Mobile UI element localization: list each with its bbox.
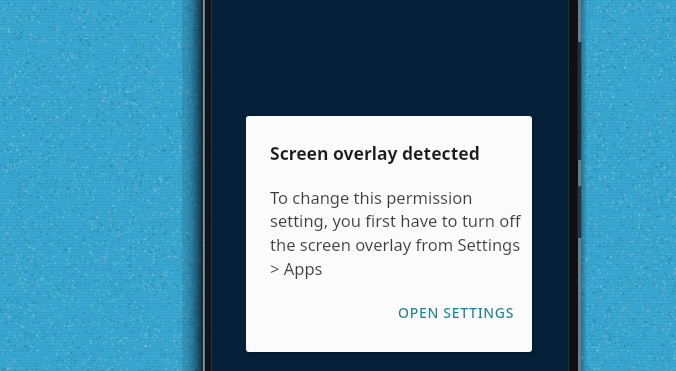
staticText: OPEN SETTINGS	[398, 303, 515, 322]
staticText: To change this permission setting, you f…	[270, 186, 521, 280]
staticText: Screen overlay detected	[270, 141, 480, 165]
button[interactable]: OPEN SETTINGS	[390, 294, 523, 331]
